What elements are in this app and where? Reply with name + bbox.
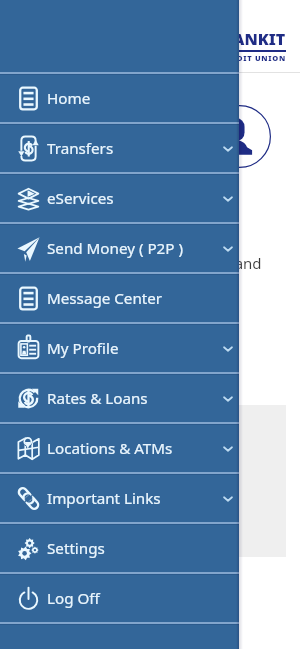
staticText: My Profile <box>47 338 119 359</box>
button[interactable]: Transfers <box>0 125 239 172</box>
staticText: Log Off <box>47 588 100 609</box>
staticText: Rates & Loans <box>47 388 148 409</box>
staticText: Welcome back Roland <box>107 253 262 273</box>
button[interactable]: Settings <box>0 525 239 572</box>
button[interactable]: eServices <box>0 175 239 222</box>
staticText: Important Links <box>47 488 161 509</box>
staticText: Home <box>47 88 91 109</box>
staticText: Transfers <box>47 138 114 159</box>
staticText: eServices <box>47 188 114 209</box>
button[interactable]: Rates & Loans <box>0 375 239 422</box>
staticText: Message Center <box>47 288 163 309</box>
staticText: BANKIT <box>222 28 286 50</box>
button[interactable]: Locations & ATMs <box>0 425 239 472</box>
button[interactable]: Send Money ( P2P ) <box>0 225 239 272</box>
button[interactable]: Log Off <box>0 575 239 622</box>
staticText: Send Money ( P2P ) <box>47 238 183 259</box>
staticText: Settings <box>47 538 105 559</box>
button[interactable]: Home <box>0 75 239 122</box>
button[interactable]: Important Links <box>0 475 239 522</box>
staticText: Locations & ATMs <box>47 438 173 459</box>
button[interactable]: My Profile <box>0 325 239 372</box>
button[interactable]: Message Center <box>0 275 239 322</box>
staticText: A CREDIT UNION <box>212 53 286 63</box>
